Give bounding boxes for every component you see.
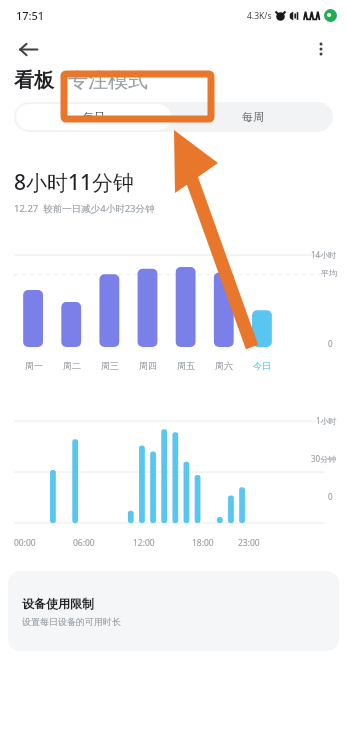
staticText: 14小时 — [311, 249, 337, 260]
button[interactable]: 每日 — [16, 104, 171, 130]
staticText: 06:00 — [73, 537, 95, 549]
staticText: 12.27 较前一日减少4小时23分钟 — [14, 202, 155, 215]
staticText: 周六 — [215, 360, 233, 371]
button[interactable]: More options — [303, 31, 339, 67]
button[interactable]: Back — [10, 31, 46, 67]
button[interactable]: 每周 — [173, 102, 333, 132]
staticText: 23:00 — [238, 537, 260, 549]
staticText: 18:00 — [192, 537, 214, 549]
staticText: 看板 — [14, 68, 54, 93]
button[interactable]: 专注模式 — [68, 68, 148, 93]
staticText: 今日 — [253, 360, 271, 371]
staticText: 周五 — [177, 360, 195, 371]
staticText: 4.3K/s — [247, 10, 272, 22]
button[interactable]: 设备使用限制 — [8, 571, 339, 651]
staticText: 设备使用限制 — [22, 596, 94, 611]
staticText: 周一 — [25, 360, 43, 371]
staticText: 17:51 — [16, 8, 45, 23]
staticText: 每周 — [242, 110, 264, 124]
staticText: 周三 — [101, 360, 119, 371]
staticText: 0 — [328, 338, 333, 349]
staticText: 周二 — [63, 360, 81, 371]
staticText: 12:00 — [133, 537, 155, 549]
staticText: 00:00 — [14, 537, 36, 549]
staticText: 8小时11分钟 — [14, 168, 135, 197]
staticText: 30分钟 — [311, 453, 337, 464]
staticText: 周四 — [139, 360, 157, 371]
staticText: 设置每日设备的可用时长 — [22, 616, 121, 627]
staticText: 每日 — [83, 110, 105, 124]
staticText: 0 — [328, 491, 333, 502]
staticText: 平均 — [321, 268, 337, 278]
staticText: 1小时 — [316, 415, 337, 426]
